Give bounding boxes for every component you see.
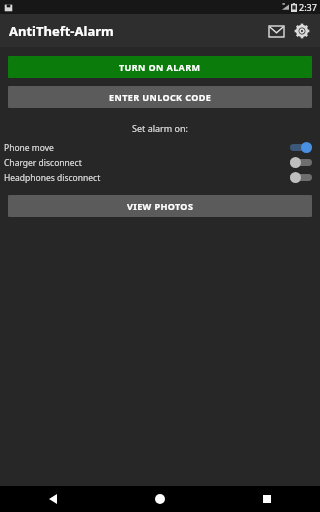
button[interactable]: Home: [106, 486, 213, 512]
button[interactable]: Messages: [264, 19, 288, 43]
button[interactable]: Recent apps: [213, 486, 320, 512]
staticText: Phone move: [4, 142, 54, 154]
button[interactable]: Headphones disconnect: [0, 170, 320, 185]
button[interactable]: ENTER UNLOCK CODE: [8, 86, 312, 108]
staticText: Headphones disconnect: [4, 172, 101, 184]
staticText: VIEW PHOTOS: [127, 200, 194, 212]
button[interactable]: Charger disconnect: [0, 155, 320, 170]
button[interactable]: Phone move: [0, 140, 320, 155]
staticText: AntiTheft-Alarm: [9, 22, 114, 40]
staticText: Set alarm on:: [0, 122, 320, 134]
button[interactable]: Settings: [290, 19, 314, 43]
staticText: TURN ON ALARM: [119, 61, 201, 73]
staticText: 2:37: [299, 1, 317, 13]
button[interactable]: TURN ON ALARM: [8, 56, 312, 78]
staticText: ENTER UNLOCK CODE: [109, 91, 212, 103]
button[interactable]: Back: [0, 486, 106, 512]
staticText: Charger disconnect: [4, 157, 82, 169]
button[interactable]: VIEW PHOTOS: [8, 195, 312, 217]
